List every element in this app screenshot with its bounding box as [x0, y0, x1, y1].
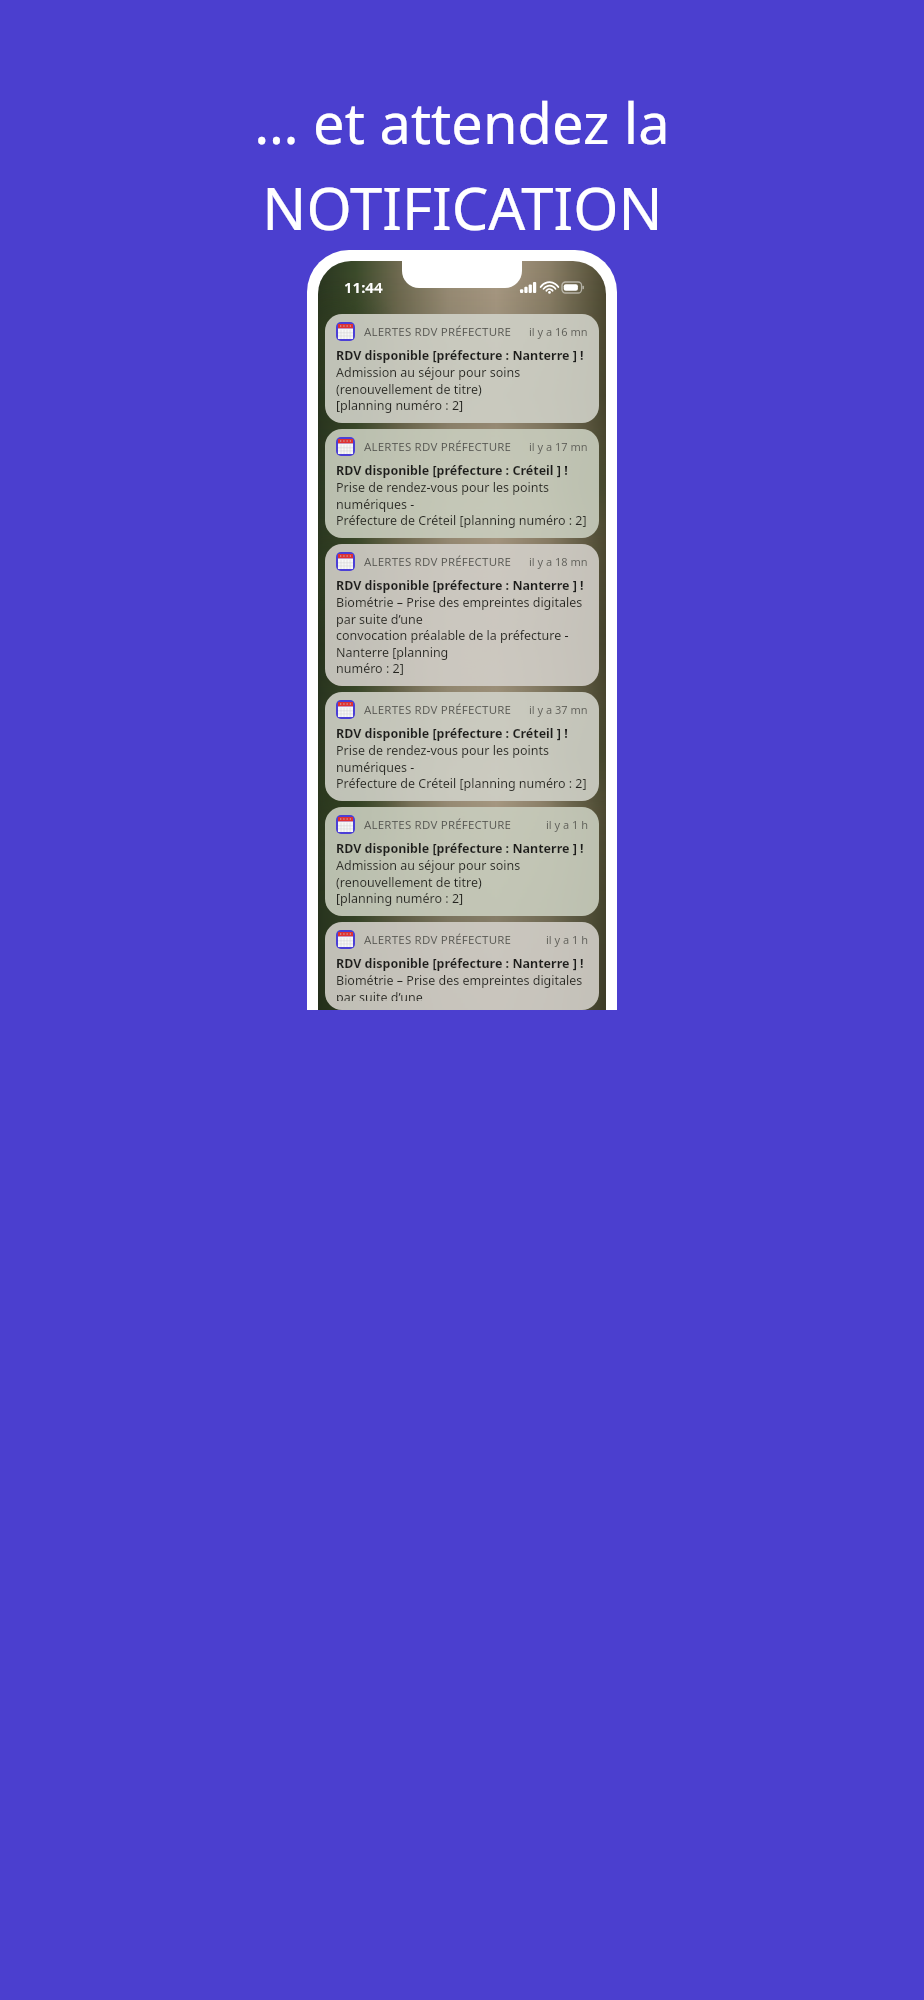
button[interactable]: Alertes RDV Préfecture [325, 807, 599, 916]
staticText: Admission au séjour pour soins (renouvel… [336, 857, 588, 890]
staticText: RDV disponible [préfecture : Nanterre ] … [336, 347, 584, 364]
staticText: ! [557, 253, 588, 332]
other: Alertes RDV Préfecture [336, 930, 355, 949]
button[interactable]: Alertes RDV Préfecture [325, 922, 599, 1010]
staticText: RDV disponible [préfecture : Créteil ] ! [336, 462, 568, 479]
staticText: il y a 37 mn [529, 702, 588, 717]
staticText: RDV disponible [préfecture : Nanterre ] … [336, 955, 584, 972]
staticText: il y a 1 h [546, 817, 588, 832]
staticText: ALERTES RDV PRÉFECTURE [364, 439, 512, 455]
staticText: PUSH [337, 253, 505, 332]
staticText: NOTIFICATION [262, 168, 663, 247]
button[interactable]: Alertes RDV Préfecture [325, 544, 599, 686]
staticText: ALERTES RDV PRÉFECTURE [364, 554, 512, 570]
staticText: ALERTES RDV PRÉFECTURE [364, 932, 512, 948]
staticText: Préfecture de Créteil [planning numéro :… [336, 512, 587, 529]
staticText: Biométrie – Prise des empreintes digital… [336, 972, 588, 1001]
staticText: Prise de rendez-vous pour les points num… [336, 742, 588, 775]
other: Alertes RDV Préfecture [336, 552, 355, 571]
other: Alertes RDV Préfecture [336, 437, 355, 456]
other: Alertes RDV Préfecture [336, 815, 355, 834]
staticText: ALERTES RDV PRÉFECTURE [364, 702, 512, 718]
staticText: Biométrie – Prise des empreintes digital… [336, 594, 588, 627]
staticText: Préfecture de Créteil [planning numéro :… [336, 775, 587, 792]
staticText: RDV disponible [préfecture : Nanterre ] … [336, 577, 584, 594]
staticText: Prise de rendez-vous pour les points num… [336, 479, 588, 512]
staticText: [planning numéro : 2] [336, 890, 464, 907]
button[interactable]: Alertes RDV Préfecture [325, 314, 599, 423]
other: Alertes RDV Préfecture [336, 322, 355, 341]
button[interactable]: Alertes RDV Préfecture [325, 692, 599, 801]
staticText: ALERTES RDV PRÉFECTURE [364, 324, 512, 340]
staticText: 11:44 [344, 277, 383, 297]
button[interactable]: Alertes RDV Préfecture [325, 429, 599, 538]
staticText: il y a 18 mn [529, 554, 588, 569]
staticText: [planning numéro : 2] [336, 397, 464, 414]
staticText: Admission au séjour pour soins (renouvel… [336, 364, 588, 397]
other: Alertes RDV Préfecture [336, 700, 355, 719]
staticText: convocation préalable de la préfecture -… [336, 627, 588, 660]
staticText: numéro : 2] [336, 660, 404, 677]
staticText: il y a 1 h [546, 932, 588, 947]
staticText: RDV disponible [préfecture : Créteil ] ! [336, 725, 568, 742]
staticText: RDV disponible [préfecture : Nanterre ] … [336, 840, 584, 857]
staticText: il y a 16 mn [529, 324, 588, 339]
staticText: il y a 17 mn [529, 439, 588, 454]
staticText: … et attendez la [254, 84, 670, 160]
staticText: ALERTES RDV PRÉFECTURE [364, 817, 512, 833]
